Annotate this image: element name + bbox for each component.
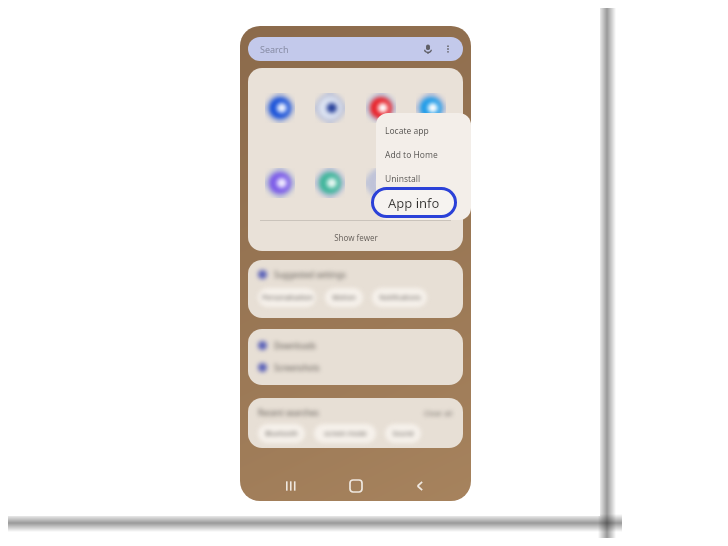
button[interactable]: Notifications (372, 288, 427, 307)
button[interactable]: Recents (278, 473, 304, 499)
button[interactable]: App (359, 161, 403, 205)
button[interactable]: Personalisation (258, 288, 316, 307)
button[interactable]: App (258, 161, 302, 205)
button[interactable]: Back (407, 473, 433, 499)
staticText: Downloads (274, 340, 316, 351)
button[interactable]: App (258, 86, 302, 130)
button[interactable]: App (409, 86, 453, 130)
button[interactable]: App (359, 86, 403, 130)
staticText: Screenshots (274, 362, 320, 373)
staticText: App info (388, 194, 440, 212)
staticText: screen mode (324, 429, 367, 439)
staticText: Personalisation (262, 293, 313, 303)
button[interactable]: Add to Home (376, 143, 471, 167)
button[interactable]: App (409, 161, 453, 205)
button[interactable]: Locate app (376, 119, 471, 143)
staticText: Uninstall (385, 173, 421, 185)
staticText: Clear all (424, 408, 453, 418)
staticText: Recent searches (258, 407, 319, 418)
staticText: Suggested settings (274, 269, 346, 280)
button[interactable]: Sound (385, 424, 421, 443)
button[interactable]: Search (248, 37, 463, 61)
button[interactable]: App info (371, 187, 457, 218)
staticText: Bluetooth (265, 429, 298, 439)
button[interactable]: screen mode (314, 424, 376, 443)
button[interactable]: Motion (325, 288, 363, 307)
staticText: Locate app (385, 125, 429, 137)
button[interactable]: Show fewer (248, 225, 463, 249)
staticText: Add to Home (385, 149, 438, 161)
staticText: Show fewer (334, 232, 378, 243)
staticText: Search (260, 43, 289, 55)
staticText: Notifications (379, 293, 421, 303)
button[interactable]: App (308, 161, 352, 205)
button[interactable]: App (308, 86, 352, 130)
staticText: Motion (332, 293, 356, 303)
button[interactable]: Bluetooth (258, 424, 305, 443)
button[interactable]: More options (441, 42, 455, 56)
button[interactable]: Home (343, 473, 369, 499)
button[interactable]: Uninstall (376, 167, 471, 191)
staticText: Sound (392, 429, 414, 439)
button[interactable]: Voice search (421, 42, 435, 56)
